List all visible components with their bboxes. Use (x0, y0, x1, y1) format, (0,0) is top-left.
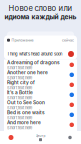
staticText: Bed is one waits (7, 109, 45, 115)
staticText: Приложение (11, 38, 33, 42)
staticText: Another one here (7, 69, 48, 75)
button[interactable]: App (4, 131, 18, 143)
button[interactable]: Центр (30, 131, 50, 143)
staticText: идиома каждый день (4, 13, 76, 21)
staticText: Short text here (7, 95, 32, 100)
button[interactable]: And more here (4, 119, 77, 129)
staticText: Short text here (7, 75, 32, 80)
staticText: Новое слово или (8, 3, 72, 13)
staticText: Центр (35, 134, 45, 138)
button[interactable]: More (63, 131, 77, 143)
staticText: Short text here (7, 65, 32, 70)
staticText: Short text here (7, 105, 32, 110)
staticText: Thing what's head around soon (7, 51, 62, 56)
staticText: Short text here (7, 125, 32, 130)
button[interactable]: Another one here (4, 69, 77, 79)
staticText: It's a Bottle (7, 89, 33, 95)
staticText: Right city of (7, 79, 35, 85)
staticText: A dreaming of dragons (7, 59, 60, 65)
staticText: Short text here (7, 115, 32, 120)
staticText: Out to See Soon (7, 99, 45, 105)
staticText: Short text here (7, 85, 32, 90)
staticText: And more here (7, 119, 41, 125)
button[interactable]: Out to See Soon (4, 99, 77, 109)
button[interactable]: Bed is one waits (4, 109, 77, 119)
button[interactable]: A dreaming of dragons (4, 59, 77, 69)
button[interactable]: Right city of (4, 79, 77, 89)
button[interactable]: It's a Bottle (4, 89, 77, 99)
staticText: сейчас (62, 38, 74, 42)
